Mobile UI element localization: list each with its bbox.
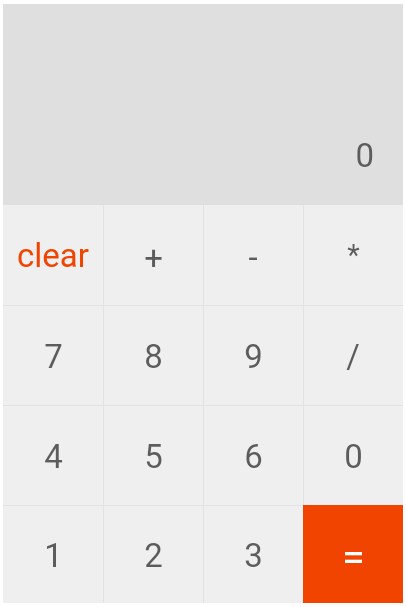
staticText: 5 xyxy=(144,437,163,476)
button[interactable]: 3 xyxy=(203,505,303,603)
staticText: 9 xyxy=(244,337,263,376)
button[interactable]: - xyxy=(203,205,303,305)
staticText: 6 xyxy=(244,437,263,476)
button[interactable]: 2 xyxy=(103,505,203,603)
staticText: clear xyxy=(17,236,89,275)
button[interactable]: 5 xyxy=(103,405,203,505)
staticText: 8 xyxy=(144,337,163,376)
button[interactable]: 4 xyxy=(3,405,103,505)
button[interactable]: / xyxy=(303,305,403,405)
button[interactable]: + xyxy=(103,205,203,305)
staticText: 0 xyxy=(344,437,363,476)
button[interactable]: equals xyxy=(303,505,403,603)
button[interactable]: clear xyxy=(3,205,103,305)
button[interactable]: * xyxy=(303,205,403,305)
staticText: 7 xyxy=(44,337,63,376)
staticText: 4 xyxy=(44,437,63,476)
staticText: 2 xyxy=(144,536,163,575)
button[interactable]: 1 xyxy=(3,505,103,603)
staticText: / xyxy=(346,337,360,376)
button[interactable]: 0 xyxy=(303,405,403,505)
staticText: 1 xyxy=(44,536,63,575)
staticText: * xyxy=(347,238,360,272)
button[interactable]: 9 xyxy=(203,305,303,405)
button[interactable]: 7 xyxy=(3,305,103,405)
button[interactable]: 8 xyxy=(103,305,203,405)
staticText: - xyxy=(248,238,258,277)
staticText: 3 xyxy=(244,536,263,575)
staticText: + xyxy=(144,238,163,277)
button[interactable]: 6 xyxy=(203,405,303,505)
staticText: 0 xyxy=(355,136,374,175)
